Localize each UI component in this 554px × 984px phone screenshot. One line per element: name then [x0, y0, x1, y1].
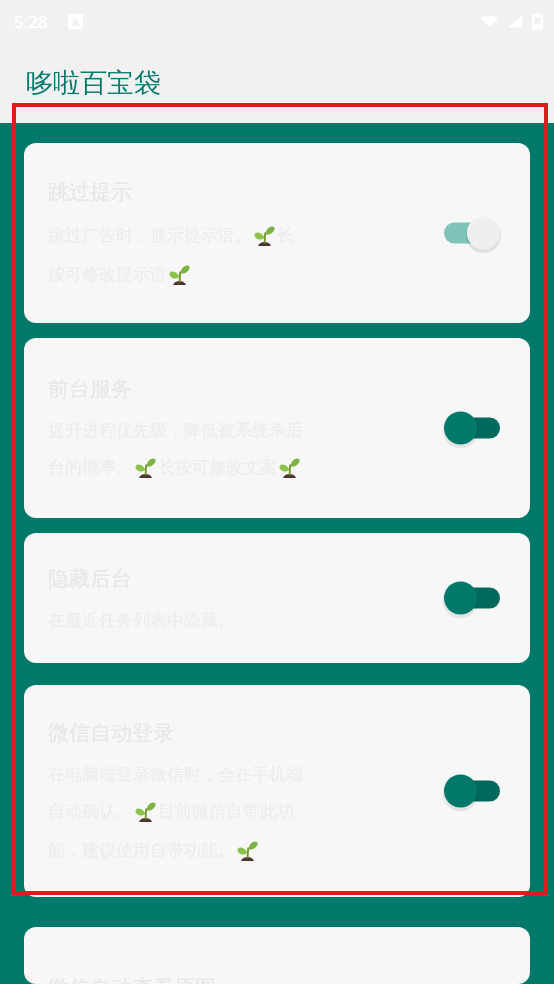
staticText: 跳过广告时，显示提示语。	[48, 225, 252, 246]
staticText: 微信自动登录	[48, 720, 174, 746]
button[interactable]: 隐藏后台	[24, 533, 530, 663]
button[interactable]: 微信自动登录 开关	[440, 769, 504, 813]
staticText: 长	[277, 225, 294, 246]
staticText: 隐藏后台	[48, 566, 132, 592]
button[interactable]: 跳过提示	[24, 143, 530, 323]
staticText: 长按可修改文案	[158, 457, 277, 478]
button[interactable]: 前台服务 开关	[440, 406, 504, 450]
button[interactable]: 微信自动查看原图	[24, 927, 530, 984]
staticText: 自动确认。	[48, 801, 133, 822]
staticText: 在最近任务列表中隐藏。	[48, 610, 235, 631]
staticText: 前台服务	[48, 376, 132, 402]
staticText: 哆啦百宝袋	[26, 66, 161, 100]
button[interactable]: 前台服务	[24, 338, 530, 518]
staticText: 跳过提示	[48, 179, 132, 205]
staticText: 按可修改提示语	[48, 264, 167, 285]
staticText: 微信自动查看原图	[48, 975, 216, 984]
button[interactable]: 微信自动登录	[24, 685, 530, 897]
staticText: 台的概率。	[48, 457, 133, 478]
staticText: 能，建议使用自带功能。	[48, 840, 235, 861]
button[interactable]: 跳过提示 开关	[440, 211, 504, 255]
staticText: 5:28	[14, 10, 48, 33]
staticText: 提升进程优先级，降低被系统杀后	[48, 420, 303, 441]
staticText: 在电脑端登录微信时，会在手机端	[48, 764, 303, 785]
button[interactable]: 隐藏后台 开关	[440, 576, 504, 620]
staticText: 目前微信自带此功	[158, 801, 294, 822]
